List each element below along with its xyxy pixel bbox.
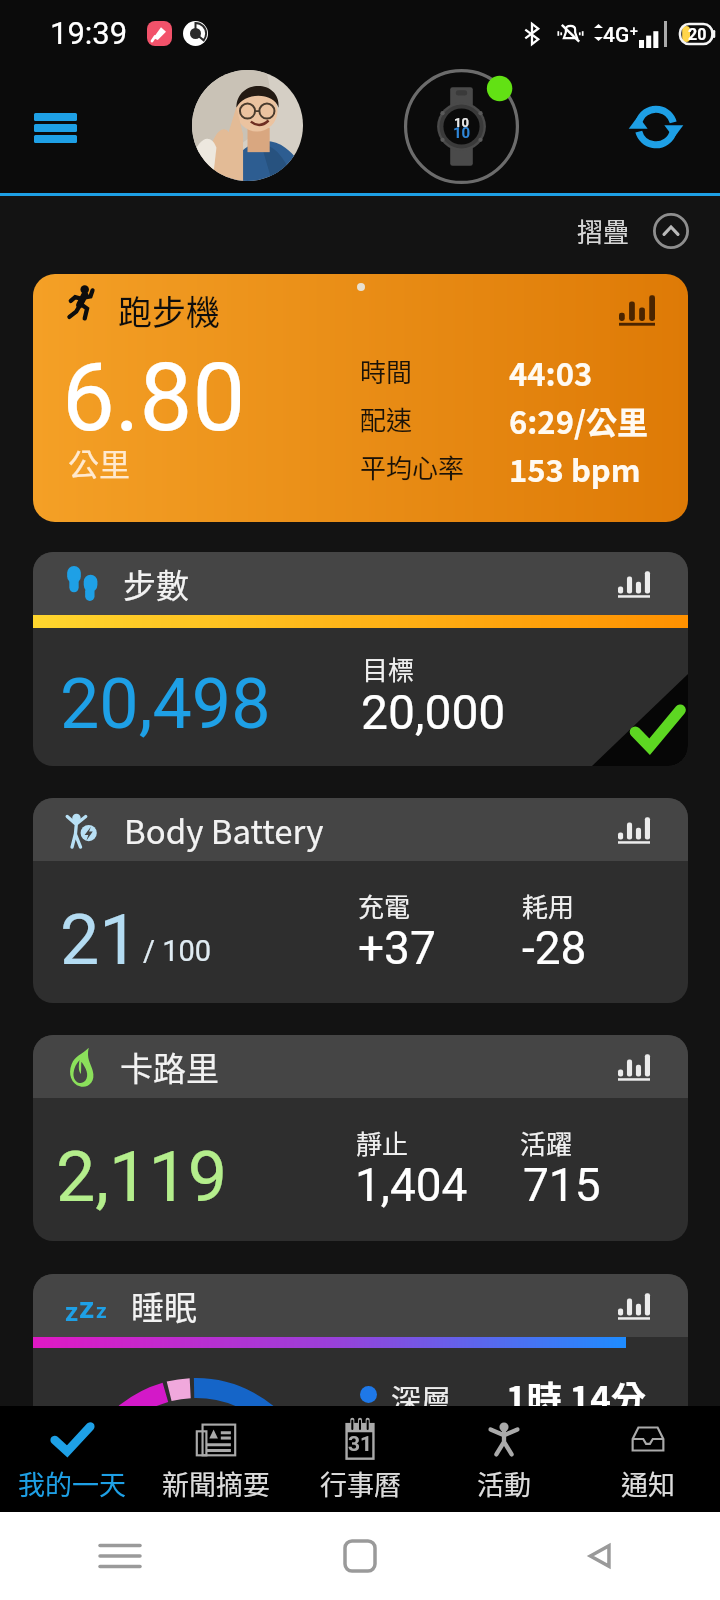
staticText: 我的一天 xyxy=(18,1464,126,1503)
staticText: 深層 xyxy=(391,1376,451,1406)
button[interactable]: Menu xyxy=(18,95,92,161)
button[interactable]: Body Battery xyxy=(33,798,688,1003)
staticText: 2,119 xyxy=(56,1136,228,1218)
staticText: 活躍 xyxy=(520,1124,573,1162)
button[interactable]: 步數 xyxy=(33,552,688,766)
staticText: 19:39 xyxy=(50,15,128,51)
button[interactable]: Sync xyxy=(620,91,692,163)
button[interactable]: 跑步機 xyxy=(33,274,688,522)
staticText: 10 xyxy=(453,124,471,142)
staticText: 新聞摘要 xyxy=(162,1464,270,1503)
button[interactable]: 我的一天 xyxy=(0,1406,144,1512)
button[interactable]: 新聞摘要 xyxy=(144,1406,288,1512)
button[interactable]: Back xyxy=(480,1512,720,1600)
staticText: 卡路里 xyxy=(120,1043,219,1091)
staticText: 6:29/公里 xyxy=(509,398,648,443)
staticText: -28 xyxy=(522,921,587,975)
button[interactable]: Recents xyxy=(0,1512,240,1600)
staticText: 715 xyxy=(523,1158,601,1212)
button[interactable]: z xyxy=(33,1274,688,1406)
staticText: 時間 xyxy=(360,352,413,390)
staticText: 睡眠 xyxy=(131,1282,197,1330)
staticText: 充電 xyxy=(358,887,411,925)
staticText: 目標 xyxy=(362,650,415,688)
staticText: 平均心率 xyxy=(360,448,465,486)
staticText: +37 xyxy=(358,921,436,975)
staticText: z xyxy=(65,1297,79,1327)
staticText: 配速 xyxy=(360,400,413,438)
staticText: 20 xyxy=(688,25,707,44)
button[interactable]: 卡路里 xyxy=(33,1035,688,1241)
staticText: 1,404 xyxy=(355,1158,468,1212)
staticText: 153 bpm xyxy=(509,446,641,491)
button[interactable]: Device xyxy=(402,67,521,186)
staticText: 活動 xyxy=(477,1464,531,1503)
staticText: 10 xyxy=(454,115,469,130)
staticText: z xyxy=(79,1290,95,1325)
staticText: 44:03 xyxy=(509,350,593,395)
staticText: 31 xyxy=(348,1432,373,1457)
staticText: 1時 14分 xyxy=(506,1371,646,1406)
staticText: 靜止 xyxy=(356,1124,409,1162)
staticText: 4G xyxy=(603,23,630,48)
staticText: Body Battery xyxy=(124,806,324,854)
button[interactable]: Home xyxy=(240,1512,480,1600)
staticText: 摺疊 xyxy=(577,212,630,250)
staticText: 步數 xyxy=(123,560,189,608)
staticText: 6.80 xyxy=(62,343,246,453)
button[interactable]: Profile xyxy=(192,70,303,181)
button[interactable]: 31 xyxy=(288,1406,432,1512)
staticText: 耗用 xyxy=(522,887,575,925)
button[interactable]: 通知 xyxy=(576,1406,720,1512)
staticText: z xyxy=(96,1299,107,1324)
staticText: 跑步機 xyxy=(118,286,220,335)
button[interactable]: 摺疊 xyxy=(565,206,703,256)
staticText: 行事曆 xyxy=(320,1464,401,1503)
staticText: 21 xyxy=(60,899,139,981)
staticText: 通知 xyxy=(621,1464,675,1503)
staticText: 20,498 xyxy=(60,663,271,745)
staticText: / 100 xyxy=(143,934,212,968)
staticText: 20,000 xyxy=(361,684,506,740)
staticText: + xyxy=(630,23,638,39)
staticText: 公里 xyxy=(68,440,130,485)
button[interactable]: 活動 xyxy=(432,1406,576,1512)
